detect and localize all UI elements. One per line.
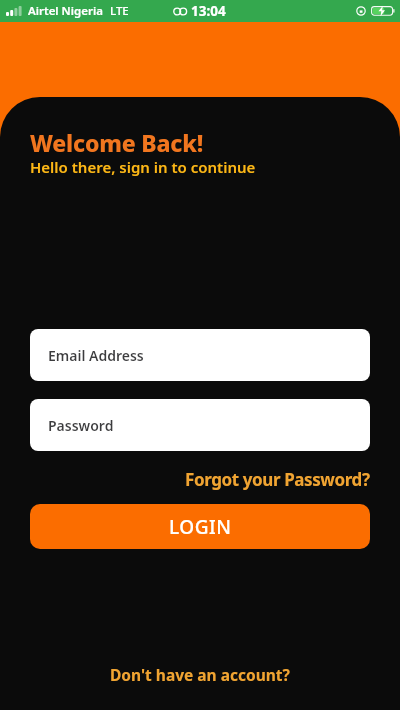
staticText: 13:04 xyxy=(191,2,226,20)
button[interactable]: Email Address xyxy=(30,329,370,381)
staticText: LOGIN xyxy=(169,514,232,540)
staticText: Email Address xyxy=(48,346,144,365)
staticText: Hello there, sign in to continue xyxy=(30,157,256,177)
button[interactable]: Don't have an account? xyxy=(110,664,290,685)
button[interactable]: Forgot your Password? xyxy=(185,468,370,491)
button[interactable]: LOGIN xyxy=(30,504,370,549)
staticText: Password xyxy=(48,416,114,435)
staticText: Airtel Nigeria xyxy=(28,3,103,19)
button[interactable]: Password xyxy=(30,399,370,451)
staticText: LTE xyxy=(110,3,129,19)
staticText: Welcome Back! xyxy=(30,127,204,158)
